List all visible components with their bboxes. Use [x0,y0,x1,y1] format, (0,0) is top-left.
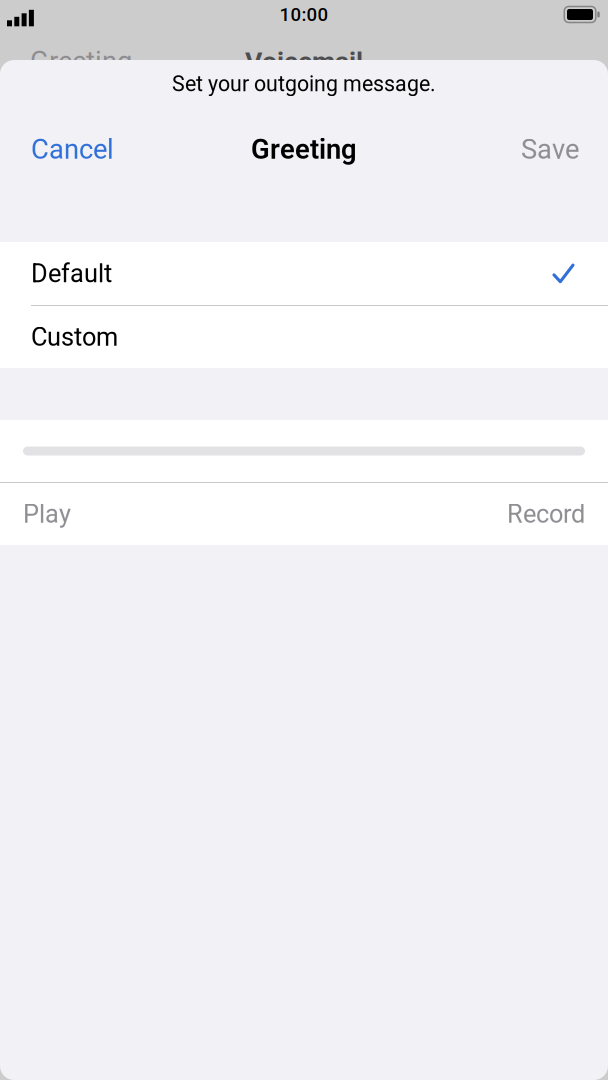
staticText: Cancel [31,133,114,165]
staticText: Custom [31,322,118,352]
button[interactable]: Play [23,483,111,545]
staticText: Default [31,259,112,288]
button[interactable]: Record [467,483,585,545]
button[interactable]: Custom [0,306,608,368]
staticText: Greeting [30,45,132,77]
staticText: Greeting [251,133,357,165]
staticText: Set your outgoing message. [172,71,436,96]
staticText: Voicemail [245,46,363,77]
staticText: Play [23,499,71,529]
staticText: 10:00 [279,4,328,25]
button[interactable]: Save [501,127,579,171]
button[interactable]: Default [0,242,608,305]
button[interactable]: Cancel [31,127,134,171]
staticText: Record [507,499,585,529]
staticText: Save [521,133,579,165]
